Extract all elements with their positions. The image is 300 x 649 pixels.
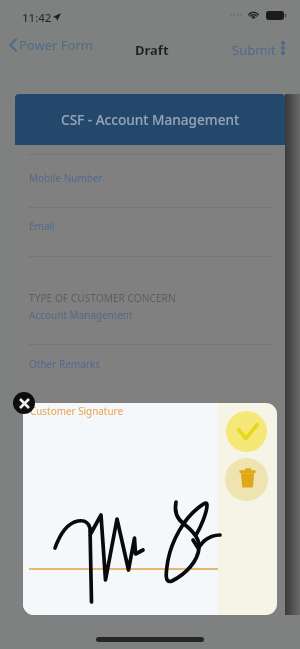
button[interactable]: Other Remarks [15, 345, 285, 391]
staticText: Customer Signature [30, 404, 124, 417]
button[interactable]: More options [276, 35, 290, 61]
button[interactable]: Submit [226, 35, 282, 65]
staticText: Power Form [19, 36, 93, 54]
button[interactable]: Clear signature [225, 458, 268, 501]
staticText: Draft [135, 41, 169, 59]
staticText: 11:42 [22, 10, 52, 26]
staticText: TYPE OF CUSTOMER CONCERN [29, 291, 176, 305]
button[interactable]: Power Form [4, 31, 101, 59]
staticText: Account Management [29, 308, 133, 322]
button[interactable]: Close [13, 392, 35, 414]
button[interactable]: TYPE OF CUSTOMER CONCERN [15, 257, 285, 344]
staticText: Mobile Number [29, 171, 103, 185]
button[interactable]: Mobile Number [15, 155, 285, 207]
staticText: CSF - Account Management [61, 110, 240, 129]
staticText: Other Remarks [29, 357, 101, 371]
button[interactable]: Accept signature [226, 411, 267, 452]
staticText: Email [29, 219, 55, 233]
